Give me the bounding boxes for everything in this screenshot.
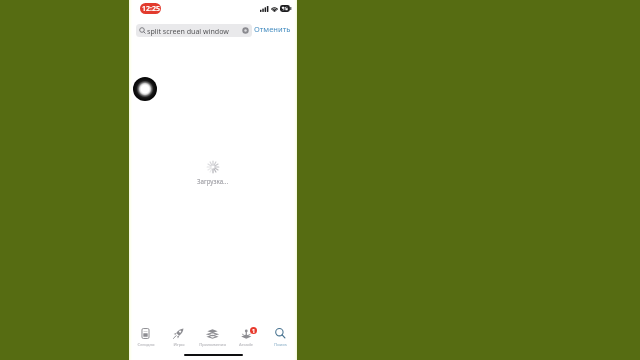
button[interactable]: Clear search: [242, 27, 249, 34]
button[interactable]: split screen dual window: [136, 24, 252, 37]
staticText: Arcade: [239, 341, 253, 347]
staticText: Игры: [173, 341, 185, 347]
button[interactable]: 1: [229, 328, 263, 347]
staticText: 1: [252, 327, 256, 334]
staticText: split screen dual window: [147, 26, 229, 36]
button[interactable]: Отменить: [254, 24, 291, 34]
staticText: Сегодня: [137, 341, 155, 347]
button[interactable]: Поиск: [263, 328, 297, 347]
button[interactable]: Screen recording timer: [140, 3, 161, 14]
staticText: Загрузка...: [197, 177, 229, 185]
staticText: Отменить: [254, 24, 291, 34]
button[interactable]: Сегодня: [129, 328, 162, 347]
staticText: Поиск: [274, 341, 287, 347]
button[interactable]: Игры: [162, 328, 195, 347]
staticText: Приложения: [199, 341, 226, 347]
button[interactable]: Приложения: [195, 328, 229, 347]
staticText: 12:25: [142, 4, 160, 14]
